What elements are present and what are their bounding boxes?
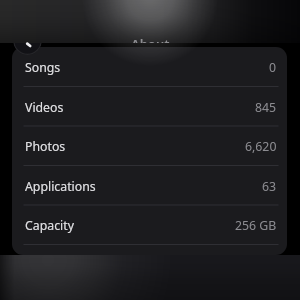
staticText: Photos bbox=[25, 138, 66, 155]
button[interactable]: Back bbox=[13, 26, 42, 55]
staticText: Songs bbox=[25, 59, 61, 76]
button[interactable]: Songs bbox=[12, 47, 287, 87]
staticText: About bbox=[131, 35, 170, 43]
staticText: 256 GB bbox=[235, 217, 277, 234]
staticText: Videos bbox=[25, 99, 64, 116]
button[interactable]: Videos bbox=[12, 87, 287, 127]
staticText: Capacity bbox=[25, 217, 74, 234]
staticText: 845 bbox=[255, 99, 277, 116]
button[interactable]: Photos bbox=[12, 126, 287, 166]
staticText: 63 bbox=[262, 178, 277, 195]
staticText: 6,620 bbox=[245, 138, 277, 155]
button[interactable]: Capacity bbox=[12, 205, 287, 245]
staticText: Applications bbox=[25, 178, 96, 195]
button[interactable]: Applications bbox=[12, 166, 287, 206]
staticText: 0 bbox=[269, 59, 277, 76]
